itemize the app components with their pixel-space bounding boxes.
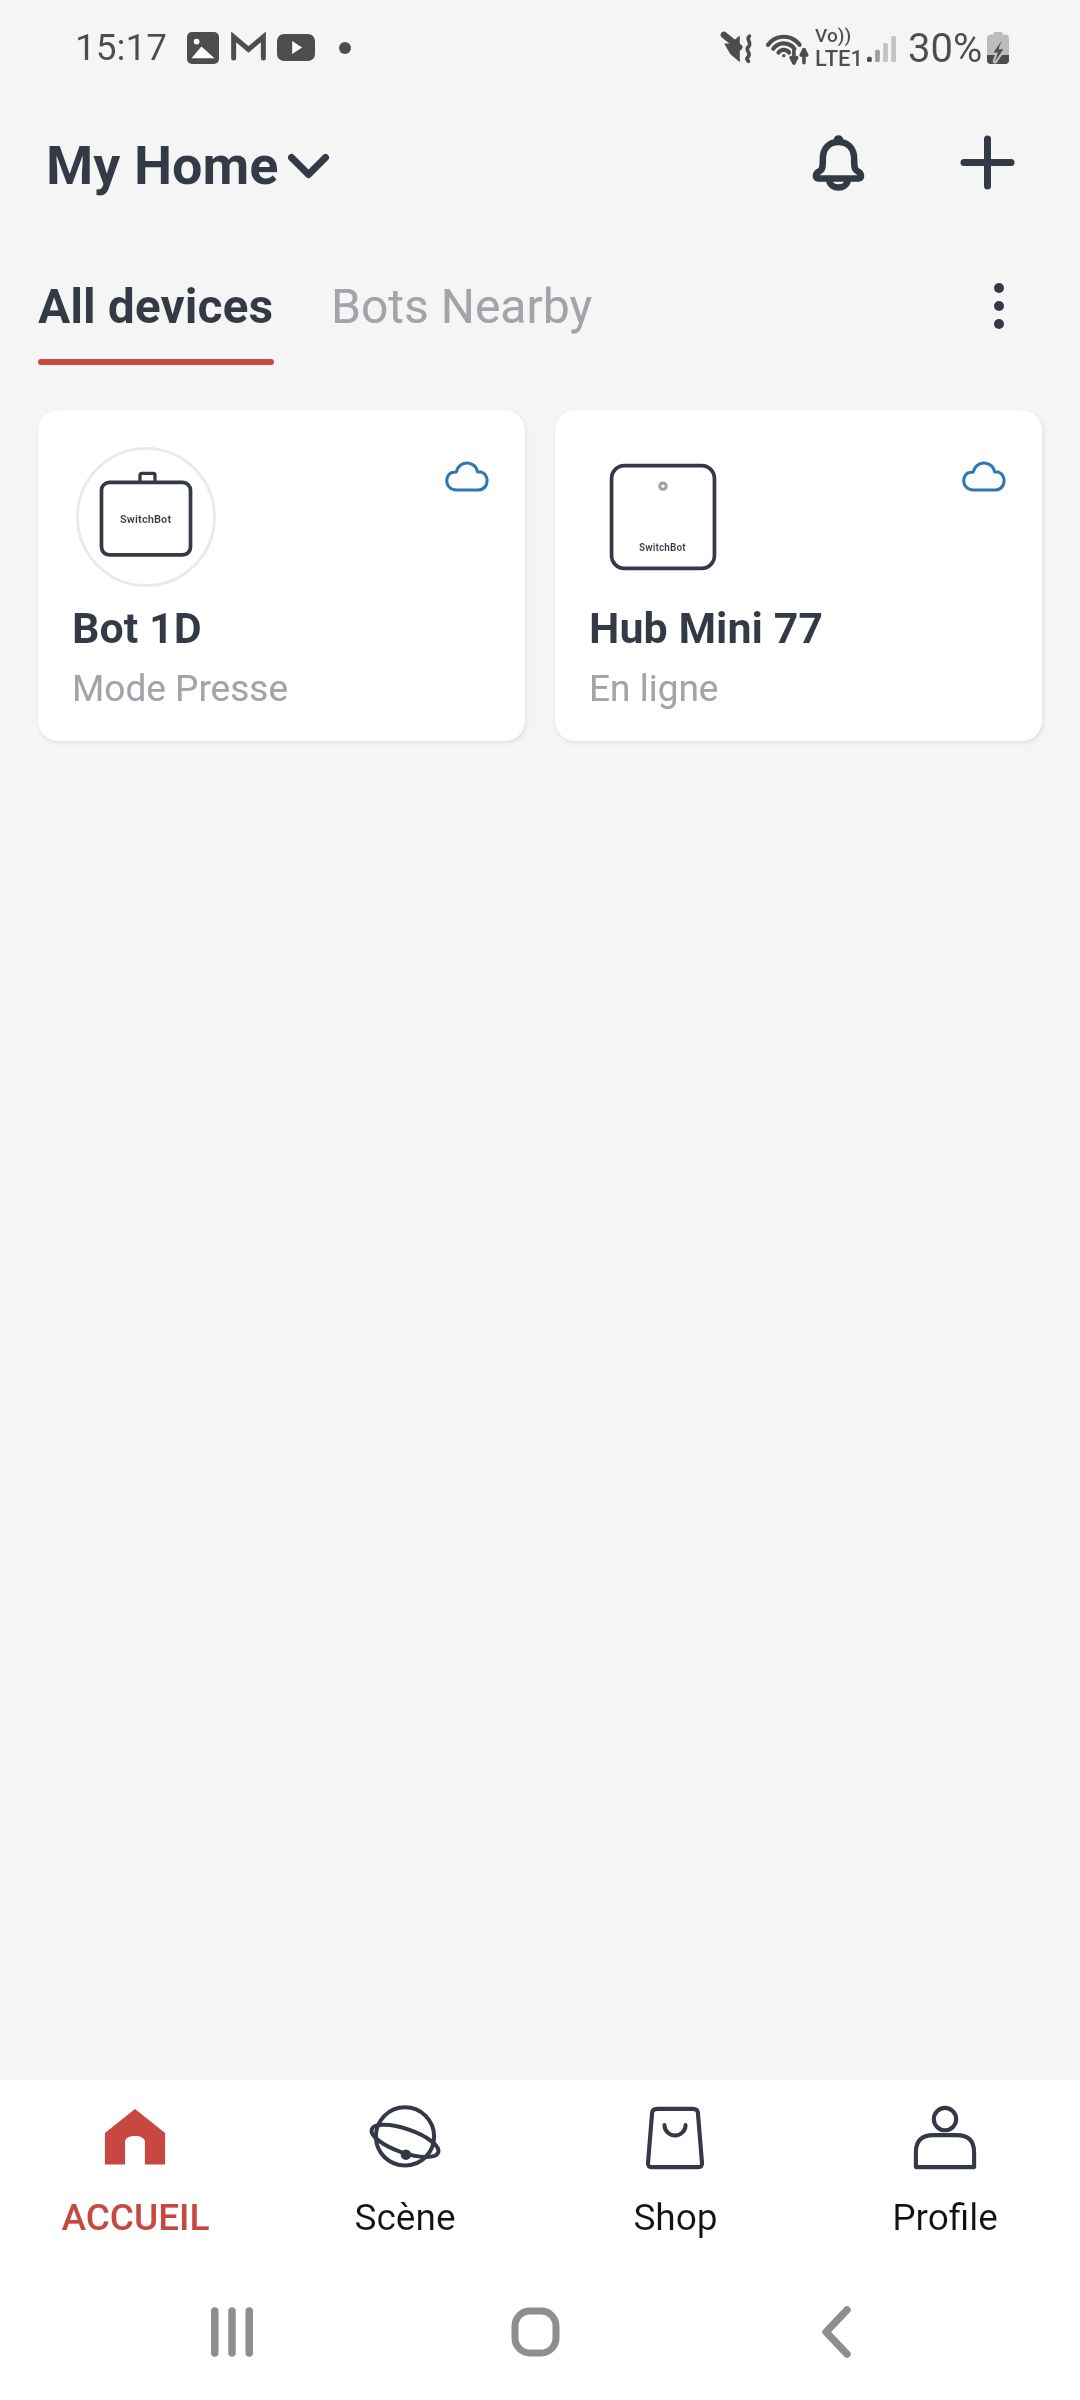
button[interactable]: Bots Nearby xyxy=(331,278,593,334)
staticText: Bot 1D xyxy=(72,603,202,653)
staticText: LTE1 xyxy=(815,46,864,72)
button[interactable]: SwitchBot xyxy=(38,410,525,741)
button[interactable]: Notifications xyxy=(778,102,898,222)
button[interactable]: Shop xyxy=(540,2080,810,2260)
staticText: Profile xyxy=(892,2196,998,2239)
staticText: SwitchBot xyxy=(120,513,172,526)
button[interactable]: Back xyxy=(776,2272,896,2392)
button[interactable]: Profile xyxy=(810,2080,1080,2260)
staticText: 30% xyxy=(908,25,983,72)
staticText: SwitchBot xyxy=(639,542,686,554)
staticText: Bots Nearby xyxy=(331,278,593,334)
staticText: Vo)) xyxy=(815,24,852,46)
staticText: All devices xyxy=(38,278,274,334)
staticText: En ligne xyxy=(589,667,719,710)
button[interactable]: All devices xyxy=(38,278,274,365)
staticText: Scène xyxy=(354,2196,456,2239)
button[interactable]: Add device xyxy=(927,102,1047,222)
button[interactable]: ACCUEIL xyxy=(0,2080,270,2260)
staticText: Shop xyxy=(633,2196,718,2239)
button[interactable]: My Home xyxy=(46,134,329,197)
button[interactable]: SwitchBot xyxy=(555,410,1042,741)
staticText: ACCUEIL xyxy=(61,2196,210,2239)
button[interactable]: Home xyxy=(475,2272,595,2392)
staticText: My Home xyxy=(46,134,279,197)
button[interactable]: Recents xyxy=(172,2272,292,2392)
staticText: Mode Presse xyxy=(72,667,289,710)
staticText: 15:17 xyxy=(75,26,168,69)
button[interactable]: More options xyxy=(939,246,1059,366)
button[interactable]: Scène xyxy=(270,2080,540,2260)
staticText: Hub Mini 77 xyxy=(589,603,824,653)
